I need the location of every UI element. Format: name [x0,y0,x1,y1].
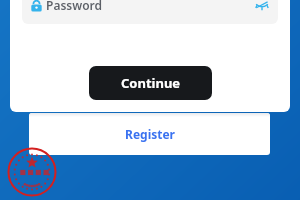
button[interactable]: Register [29,113,270,155]
staticText: Register [125,126,175,142]
staticText: Password [46,0,103,13]
staticText: Continue [121,74,181,92]
button[interactable]: Show password [254,0,270,13]
button[interactable]: Continue [89,66,212,100]
button[interactable]: Password [22,0,278,24]
